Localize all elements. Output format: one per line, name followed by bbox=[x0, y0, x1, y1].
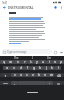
staticText: 9:41 bbox=[2, 1, 8, 5]
staticText: g bbox=[33, 66, 35, 70]
staticText: d bbox=[20, 66, 22, 70]
staticText: f bbox=[27, 66, 28, 70]
staticText: ?123 bbox=[3, 82, 8, 85]
staticText: y bbox=[36, 60, 38, 64]
button[interactable]: i bbox=[46, 60, 52, 64]
button[interactable]: w bbox=[7, 60, 14, 64]
staticText: ⏎ bbox=[57, 82, 60, 85]
button[interactable]: ⌫ bbox=[54, 73, 64, 77]
button[interactable]: More options bbox=[59, 5, 64, 10]
button[interactable]: x bbox=[18, 73, 24, 77]
button[interactable]: t bbox=[28, 60, 34, 64]
staticText: Type a message bbox=[7, 50, 27, 54]
staticText: n bbox=[44, 73, 46, 77]
button[interactable]: . bbox=[46, 81, 53, 85]
staticText: . bbox=[49, 81, 50, 85]
button[interactable]: e bbox=[14, 60, 21, 64]
staticText: i bbox=[49, 60, 50, 64]
button[interactable]: o bbox=[52, 60, 58, 64]
staticText: o bbox=[54, 60, 56, 64]
staticText: The bbox=[14, 56, 19, 60]
button[interactable]: , bbox=[11, 81, 18, 85]
button[interactable]: z bbox=[11, 73, 18, 77]
button[interactable]: l bbox=[55, 66, 61, 70]
staticText: t bbox=[30, 60, 32, 64]
button[interactable]: n bbox=[42, 73, 48, 77]
staticText: h bbox=[39, 66, 41, 70]
staticText: x bbox=[20, 73, 22, 77]
button[interactable]: Back bbox=[0, 5, 8, 10]
staticText: w bbox=[9, 60, 12, 64]
staticText: a bbox=[6, 66, 8, 70]
button[interactable]: u bbox=[40, 60, 46, 64]
button[interactable]: Camera bbox=[58, 48, 64, 56]
staticText: I bbox=[32, 56, 33, 60]
staticText: k bbox=[51, 66, 53, 70]
staticText: b bbox=[38, 73, 40, 77]
button[interactable]: y bbox=[34, 60, 40, 64]
staticText: e bbox=[17, 60, 19, 64]
button[interactable]: ?123 bbox=[0, 81, 11, 85]
button[interactable]: Call bbox=[52, 5, 59, 10]
button[interactable]: b bbox=[36, 73, 42, 77]
button[interactable]: k bbox=[49, 66, 55, 70]
button[interactable]: s bbox=[10, 66, 17, 70]
button[interactable]: p bbox=[58, 60, 64, 64]
staticText: j bbox=[46, 66, 47, 70]
staticText: ⌫ bbox=[57, 74, 61, 77]
staticText: z bbox=[14, 73, 16, 77]
button[interactable]: a bbox=[3, 66, 10, 70]
staticText: c bbox=[26, 73, 28, 77]
button[interactable]: Attach bbox=[52, 48, 58, 56]
button[interactable]: v bbox=[30, 73, 36, 77]
button[interactable]: q bbox=[0, 60, 7, 64]
button[interactable]: d bbox=[17, 66, 24, 70]
button[interactable]: f bbox=[24, 66, 31, 70]
staticText: m bbox=[50, 73, 53, 77]
button[interactable]: g bbox=[31, 66, 37, 70]
button[interactable]: j bbox=[43, 66, 49, 70]
staticText: , bbox=[14, 81, 15, 85]
staticText: ⇧ bbox=[4, 74, 7, 77]
staticText: INSTRUMENTAL bbox=[8, 5, 34, 10]
button[interactable]: r bbox=[21, 60, 28, 64]
button[interactable]: h bbox=[37, 66, 43, 70]
button[interactable]: ⇧ bbox=[0, 73, 11, 77]
staticText: v bbox=[32, 73, 34, 77]
button[interactable]: c bbox=[24, 73, 30, 77]
staticText: I'm bbox=[47, 56, 51, 60]
staticText: r bbox=[24, 60, 26, 64]
staticText: q bbox=[3, 60, 5, 64]
staticText: s bbox=[13, 66, 15, 70]
button[interactable]: m bbox=[48, 73, 54, 77]
button[interactable]: Type a message bbox=[2, 49, 52, 54]
staticText: p bbox=[60, 60, 62, 64]
button[interactable]: ⏎ bbox=[53, 81, 64, 85]
staticText: l bbox=[58, 66, 59, 70]
staticText: u bbox=[42, 60, 44, 64]
